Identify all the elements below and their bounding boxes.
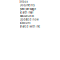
staticText: Updated now <box>19 18 38 21</box>
staticText: Shared with me <box>19 25 40 28</box>
staticText: Inbox <box>19 0 27 3</box>
staticText: Account <box>19 21 30 25</box>
staticText: Documents <box>19 3 34 7</box>
staticText: Search mail <box>19 11 33 14</box>
staticText: New Message <box>19 7 36 11</box>
staticText: MAILBOXES <box>19 14 33 18</box>
